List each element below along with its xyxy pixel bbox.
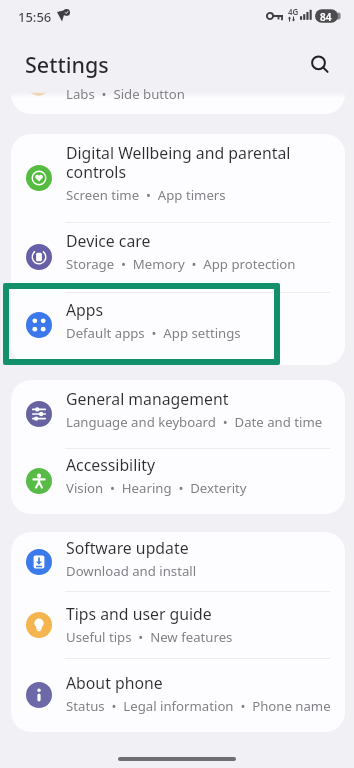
button[interactable]: Accessibility — [11, 448, 345, 514]
staticText: General management — [66, 388, 229, 410]
staticText: 84 — [320, 10, 332, 24]
staticText: 4G — [288, 6, 299, 17]
button[interactable] — [306, 50, 333, 77]
staticText: Device care — [66, 230, 151, 252]
button[interactable]: Digital Wellbeing and parental controls — [11, 134, 345, 222]
staticText: Language and keyboard • Date and time — [66, 413, 323, 431]
staticText: Download and install — [66, 562, 197, 580]
staticText: Status • Legal information • Phone name — [66, 697, 331, 715]
staticText: Apps — [66, 299, 104, 321]
staticText: Vision • Hearing • Dexterity — [66, 479, 247, 497]
staticText: Tips and user guide — [66, 603, 212, 625]
staticText: Settings — [25, 50, 109, 79]
button[interactable]: Labs • Side button — [11, 84, 345, 114]
staticText: Accessibility — [66, 454, 156, 476]
button[interactable]: Device care — [11, 222, 345, 292]
staticText: About phone — [66, 672, 163, 694]
staticText: Digital Wellbeing and parental controls — [66, 142, 291, 183]
button[interactable]: General management — [11, 380, 345, 448]
button[interactable]: Software update — [11, 532, 345, 591]
staticText: Screen time • App timers — [66, 186, 226, 204]
button[interactable] — [118, 757, 236, 761]
staticText: Useful tips • New features — [66, 628, 233, 646]
button[interactable]: About phone — [11, 658, 345, 732]
staticText: Storage • Memory • App protection — [66, 255, 296, 273]
staticText: Default apps • App settings — [66, 324, 241, 342]
staticText: 15:56 — [18, 8, 52, 26]
staticText: Software update — [66, 537, 189, 559]
button[interactable]: Tips and user guide — [11, 591, 345, 658]
button[interactable]: Apps — [11, 292, 345, 358]
staticText: Labs • Side button — [66, 85, 185, 103]
